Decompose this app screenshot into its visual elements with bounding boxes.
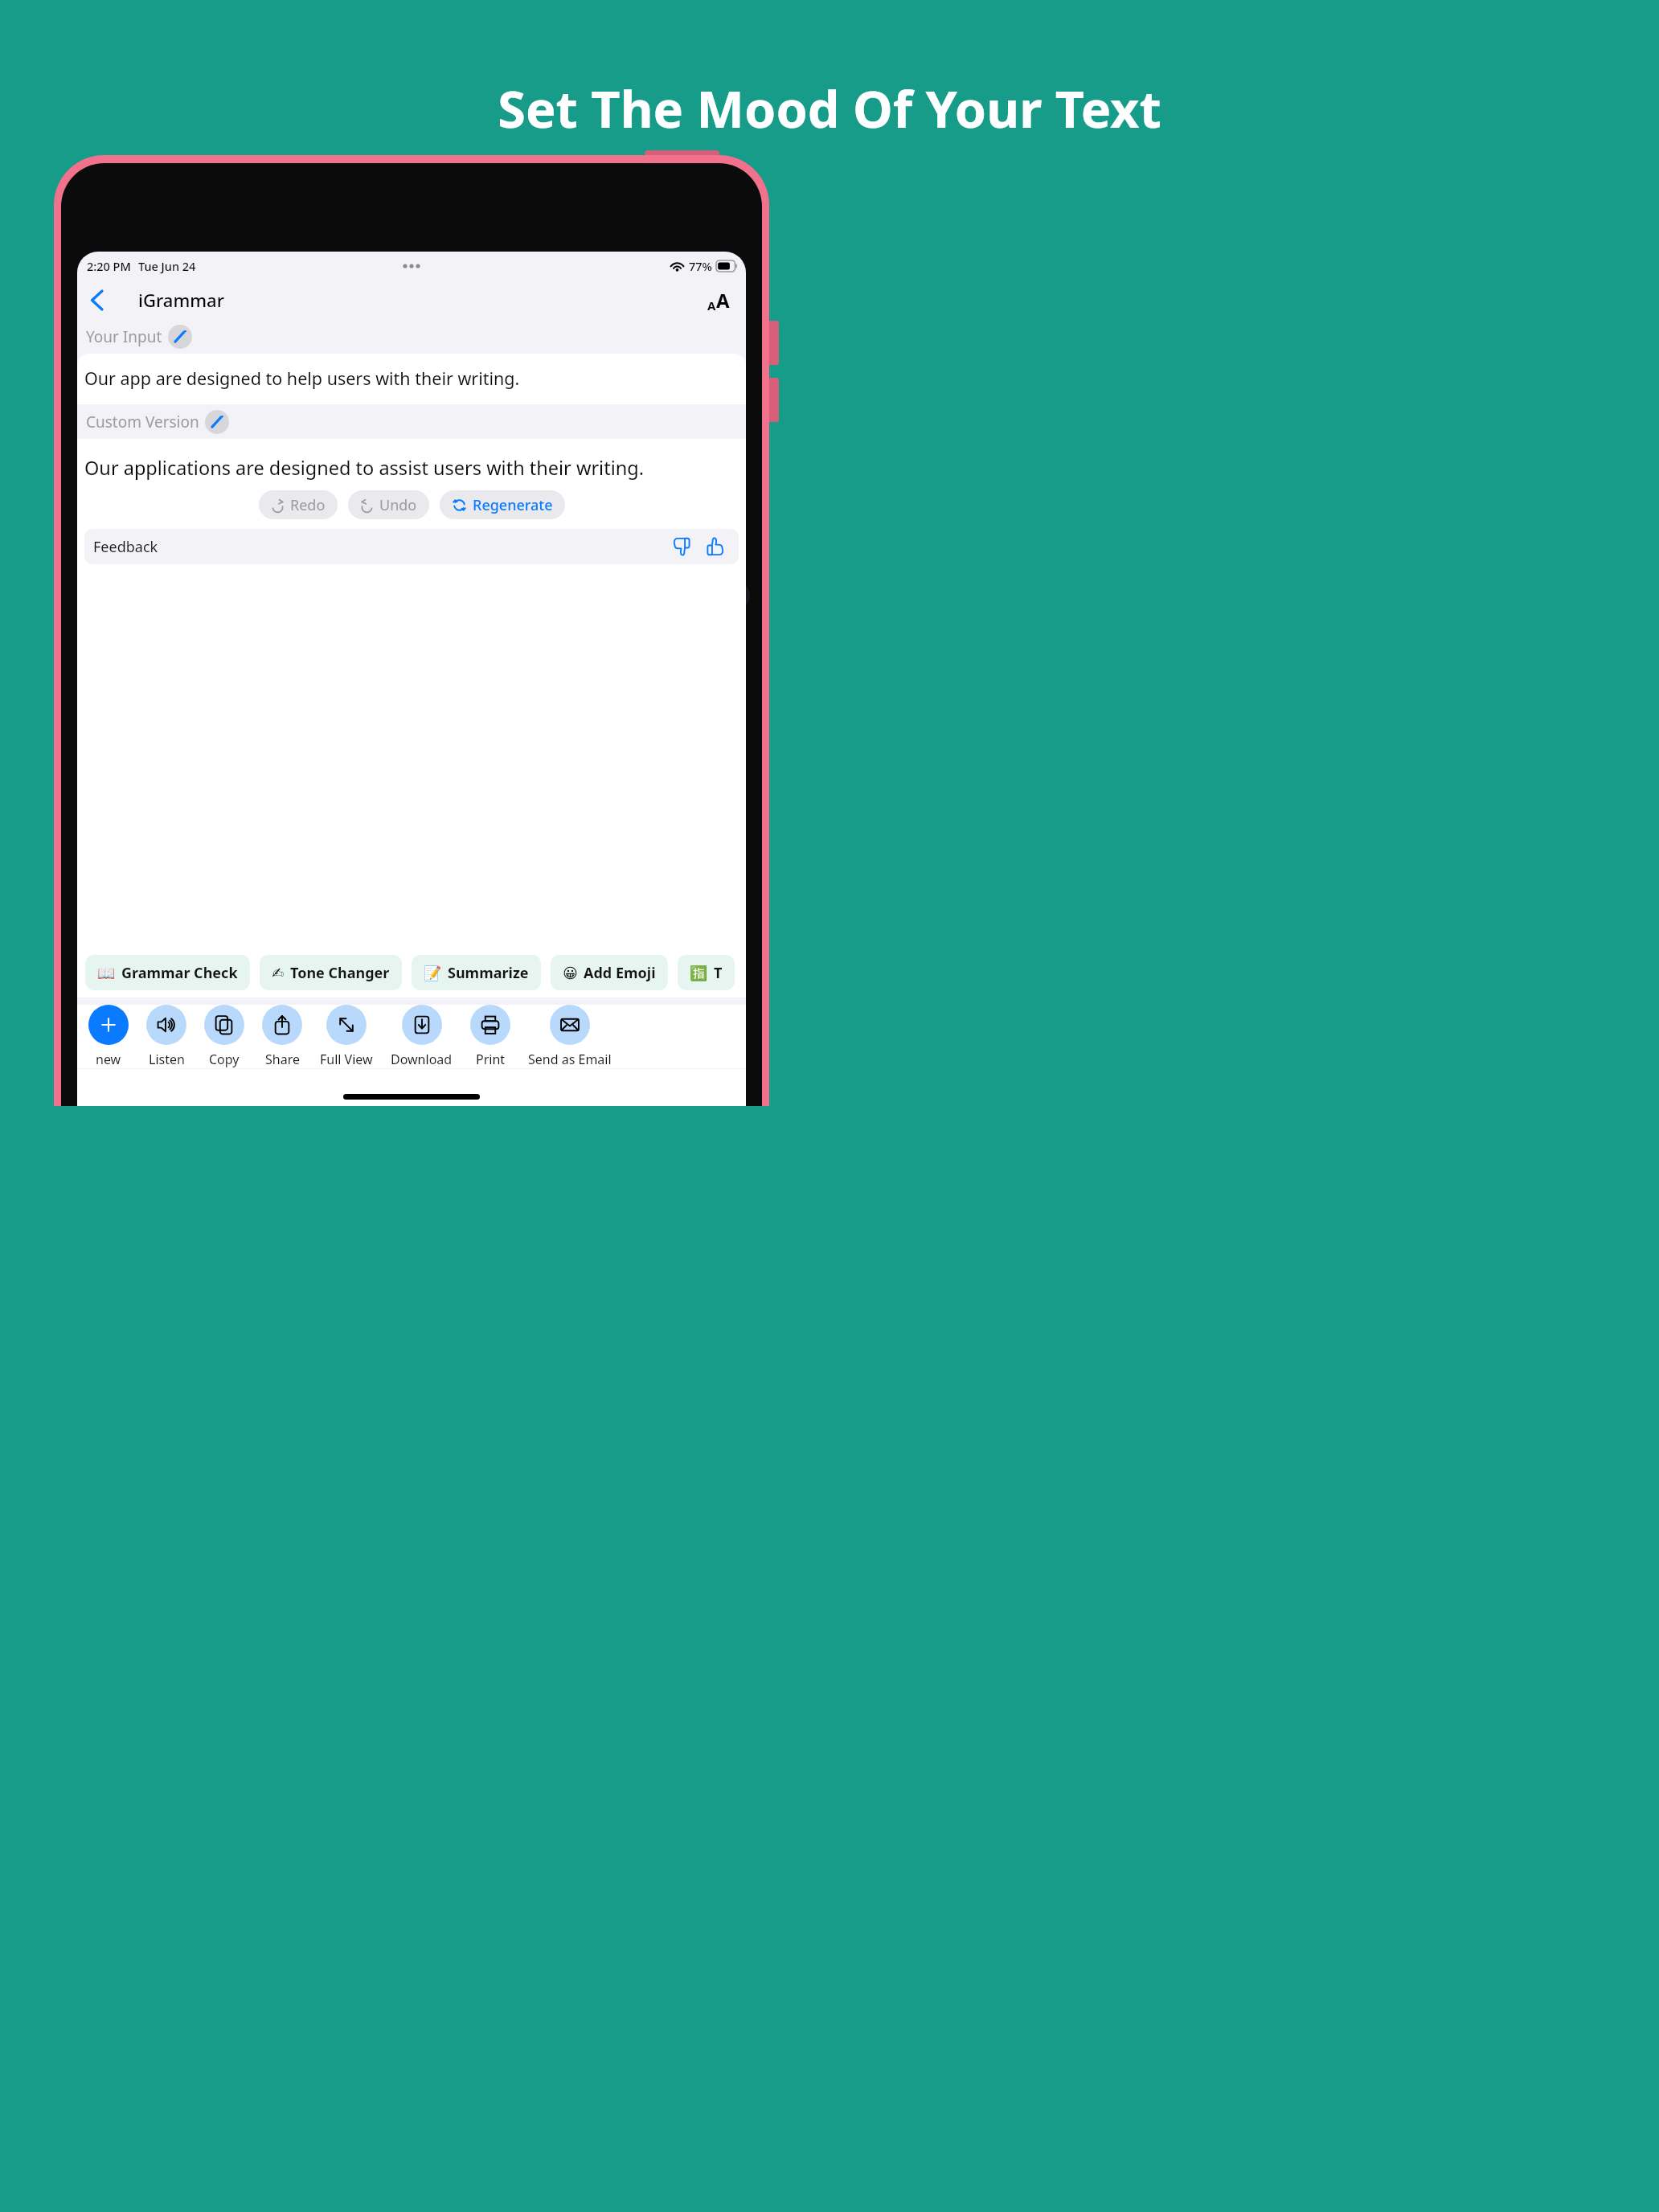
button[interactable]: Send as Email <box>528 1005 612 1068</box>
staticText: Copy <box>209 1051 240 1068</box>
staticText: 2:20 PM <box>87 258 131 274</box>
button[interactable]: Edit Your Input <box>168 325 192 349</box>
staticText: Custom Version <box>86 412 199 432</box>
button[interactable]: Share <box>262 1005 302 1068</box>
staticText: T <box>714 963 723 983</box>
button[interactable]: Text size <box>699 284 738 316</box>
button[interactable]: Download <box>391 1005 453 1068</box>
button[interactable]: 🈯 <box>678 955 735 990</box>
staticText: Redo <box>290 495 326 515</box>
button[interactable]: Full View <box>320 1005 373 1068</box>
button[interactable]: Redo <box>259 490 338 519</box>
staticText: 📝 <box>424 965 442 981</box>
button[interactable]: 📖 <box>85 955 250 990</box>
button[interactable]: Regenerate <box>440 490 565 519</box>
staticText: 🈯 <box>690 965 708 981</box>
button[interactable]: Listen <box>146 1005 186 1068</box>
staticText: ✍️ <box>272 965 285 981</box>
staticText: A <box>716 287 730 313</box>
staticText: 😀 <box>563 965 578 981</box>
staticText: Our app are designed to help users with … <box>84 367 520 390</box>
staticText: new <box>96 1051 121 1068</box>
button[interactable]: 📝 <box>412 955 541 990</box>
staticText: Summarize <box>448 963 529 983</box>
staticText: Regenerate <box>473 495 553 515</box>
button[interactable]: new <box>88 1005 129 1068</box>
staticText: Print <box>476 1051 506 1068</box>
staticText: Send as Email <box>528 1051 612 1068</box>
staticText: Full View <box>320 1051 373 1068</box>
staticText: Grammar Check <box>121 963 238 983</box>
staticText: 77% <box>689 258 712 274</box>
staticText: Tue Jun 24 <box>138 258 196 274</box>
staticText: Our applications are designed to assist … <box>84 455 644 481</box>
button[interactable]: Thumbs down <box>667 532 696 561</box>
button[interactable]: Copy <box>204 1005 244 1068</box>
staticText: Undo <box>379 495 417 515</box>
button[interactable]: Thumbs up <box>701 532 730 561</box>
staticText: Download <box>391 1051 453 1068</box>
staticText: Your Input <box>86 326 162 347</box>
button[interactable]: Print <box>470 1005 510 1068</box>
staticText: Share <box>265 1051 300 1068</box>
button[interactable]: Feedback <box>84 529 739 564</box>
staticText: 📖 <box>97 965 116 981</box>
button[interactable]: Back <box>80 284 113 316</box>
button[interactable]: Edit Custom Version <box>205 410 229 434</box>
staticText: Listen <box>149 1051 185 1068</box>
button[interactable]: Undo <box>348 490 429 519</box>
button[interactable]: 😀 <box>551 955 668 990</box>
staticText: iGrammar <box>138 288 224 312</box>
button[interactable]: ✍️ <box>260 955 402 990</box>
staticText: Feedback <box>93 537 158 557</box>
staticText: Set The Mood Of Your Text <box>498 74 1161 143</box>
staticText: Tone Changer <box>290 963 390 983</box>
staticText: A <box>707 297 716 313</box>
staticText: Add Emoji <box>584 963 656 983</box>
